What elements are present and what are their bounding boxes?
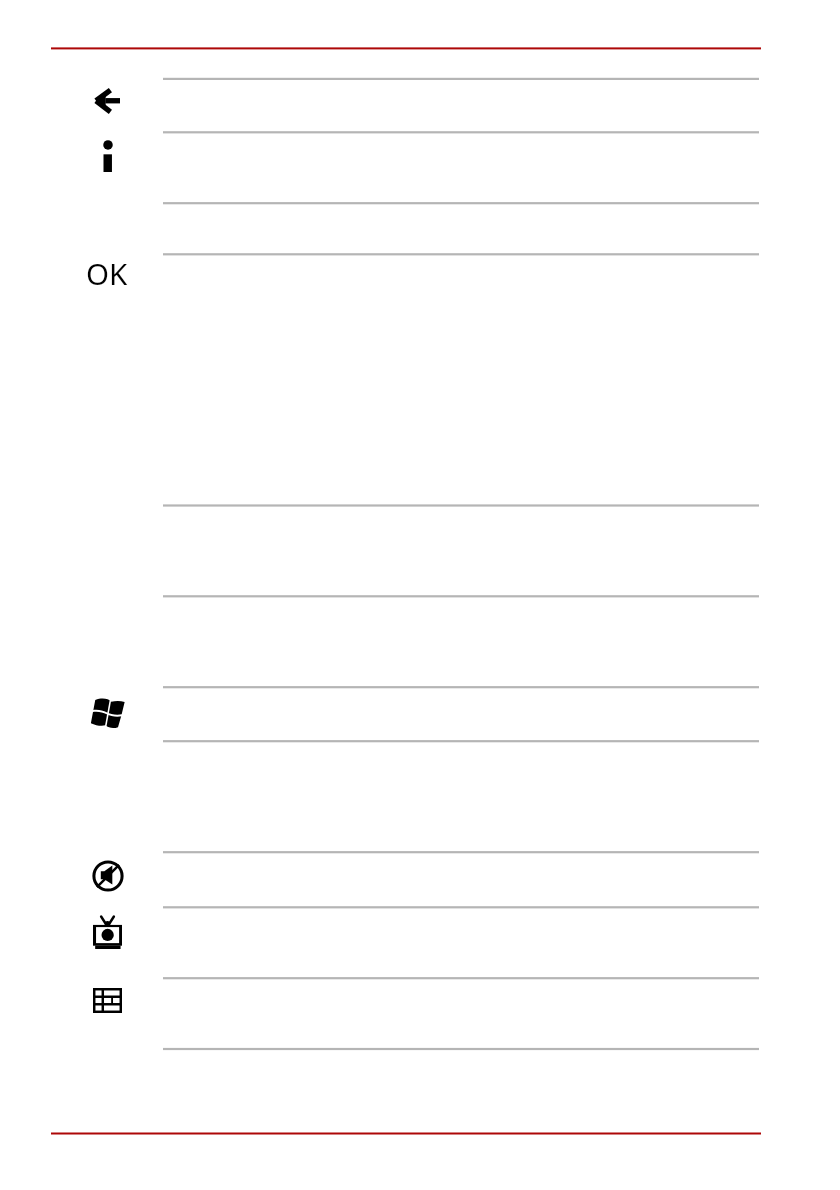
button[interactable] xyxy=(0,741,840,852)
button[interactable]: Information xyxy=(103,141,113,172)
button[interactable]: Back xyxy=(96,88,120,114)
button[interactable]: Windows key xyxy=(90,697,125,728)
button[interactable] xyxy=(0,978,840,1049)
button[interactable] xyxy=(0,596,840,687)
button[interactable]: OK xyxy=(86,253,128,293)
button[interactable] xyxy=(0,79,840,132)
button[interactable] xyxy=(0,505,840,596)
button[interactable] xyxy=(0,203,840,254)
button[interactable] xyxy=(0,907,840,978)
staticText: OK xyxy=(86,253,128,293)
button[interactable]: Display output xyxy=(93,916,122,949)
button[interactable] xyxy=(0,687,840,741)
button[interactable]: Mute xyxy=(92,860,124,892)
button[interactable]: Table xyxy=(93,988,122,1013)
button[interactable] xyxy=(0,254,840,505)
button[interactable] xyxy=(0,852,840,907)
button[interactable] xyxy=(0,132,840,203)
